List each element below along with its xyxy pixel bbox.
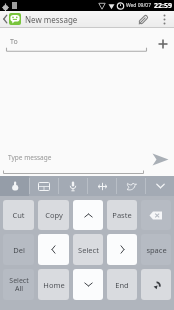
button[interactable]: Copy bbox=[38, 200, 69, 230]
button[interactable] bbox=[135, 11, 151, 27]
staticText: End bbox=[115, 280, 129, 290]
button[interactable] bbox=[160, 11, 168, 27]
staticText: space bbox=[146, 245, 167, 255]
button[interactable]: End bbox=[107, 269, 137, 300]
button[interactable]: Cut bbox=[3, 200, 34, 230]
staticText: Wed 09/07 bbox=[126, 2, 152, 9]
button[interactable]: Type message bbox=[3, 149, 144, 176]
staticText: Del bbox=[13, 245, 25, 255]
staticText: New message bbox=[25, 14, 78, 25]
staticText: Cut bbox=[12, 210, 25, 220]
button[interactable] bbox=[141, 269, 171, 300]
button[interactable] bbox=[30, 176, 58, 196]
button[interactable]: Paste bbox=[107, 200, 137, 230]
button[interactable] bbox=[0, 176, 29, 196]
button[interactable] bbox=[59, 176, 87, 196]
button[interactable] bbox=[107, 234, 137, 265]
button[interactable]: To bbox=[6, 35, 147, 52]
button[interactable]: space bbox=[141, 234, 171, 265]
staticText: 22:59 bbox=[154, 1, 172, 11]
button[interactable] bbox=[73, 269, 103, 300]
staticText: Paste bbox=[112, 210, 132, 220]
button[interactable]: Select All bbox=[3, 269, 34, 300]
button[interactable] bbox=[141, 200, 171, 230]
button[interactable] bbox=[2, 13, 22, 25]
button[interactable] bbox=[88, 176, 116, 196]
staticText: To bbox=[10, 37, 18, 47]
button[interactable] bbox=[38, 234, 69, 265]
staticText: Select All bbox=[9, 276, 29, 293]
button[interactable] bbox=[150, 149, 170, 169]
button[interactable] bbox=[117, 176, 145, 196]
staticText: Home bbox=[43, 280, 65, 290]
staticText: Copy bbox=[45, 210, 63, 220]
button[interactable]: Del bbox=[3, 234, 34, 265]
button[interactable]: Home bbox=[38, 269, 69, 300]
button[interactable] bbox=[73, 200, 103, 230]
button[interactable] bbox=[146, 176, 174, 196]
staticText: Type message bbox=[8, 153, 52, 162]
staticText: Select bbox=[78, 245, 99, 255]
button[interactable]: Select bbox=[73, 234, 103, 265]
button[interactable] bbox=[154, 35, 171, 52]
